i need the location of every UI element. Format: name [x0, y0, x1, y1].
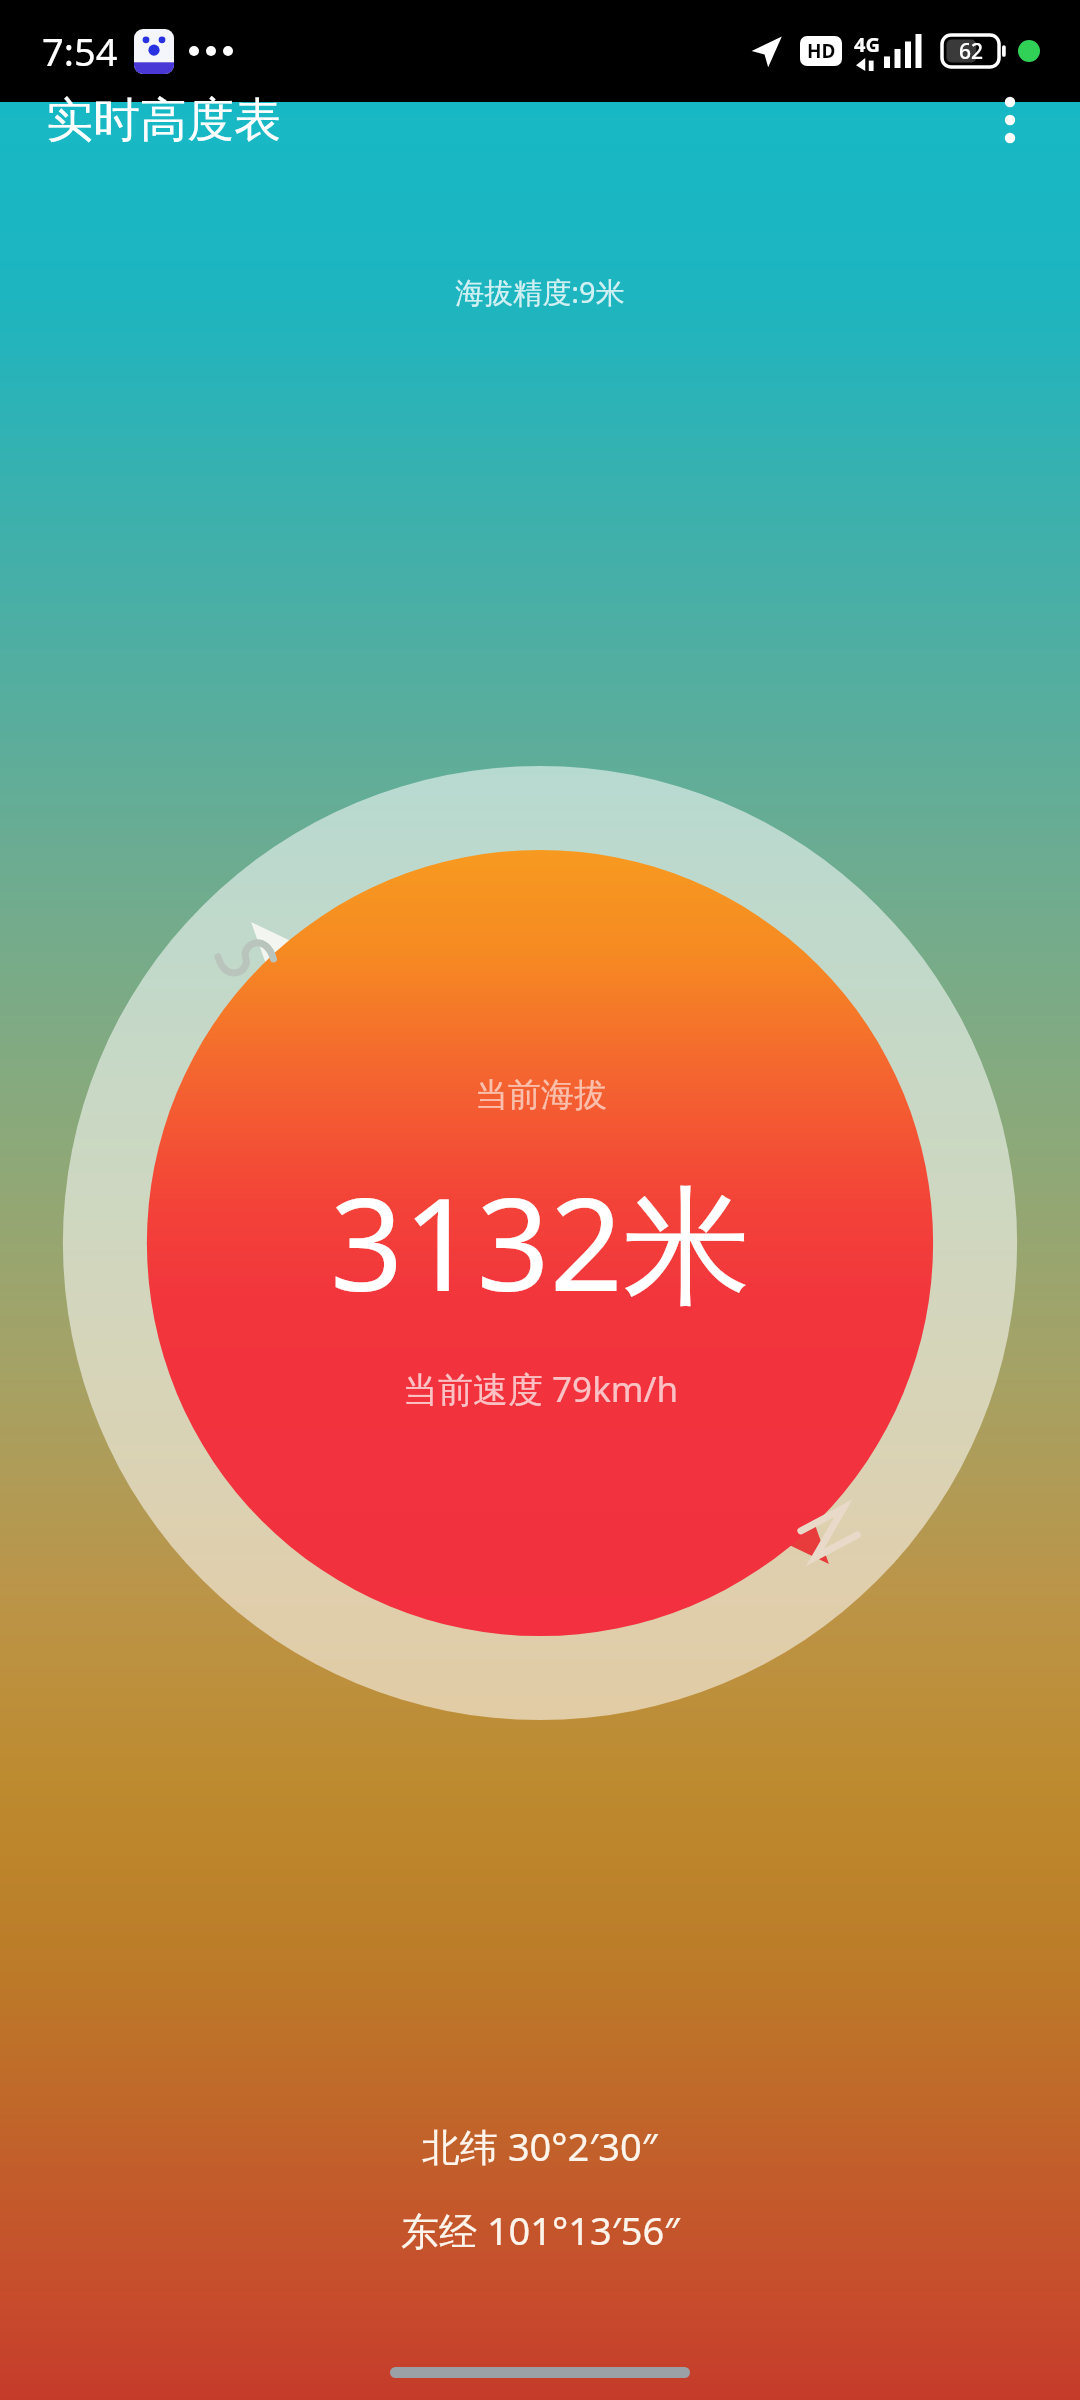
staticText: 7:54 — [42, 25, 118, 77]
staticText: 当前速度 79km/h — [403, 1365, 679, 1413]
staticText: 4G — [854, 31, 880, 58]
staticText: 62 — [959, 37, 984, 66]
staticText: 当前海拔 — [475, 1074, 607, 1116]
staticText: 实时高度表 — [46, 91, 281, 150]
staticText: 东经 101°13′56″ — [401, 2204, 680, 2256]
staticText: HD — [807, 38, 836, 64]
staticText: 北纬 30°2′30″ — [422, 2120, 658, 2172]
staticText: 3132米 — [330, 1154, 751, 1329]
staticText: 海拔精度:9米 — [455, 272, 625, 312]
button[interactable]: More options — [962, 72, 1058, 168]
